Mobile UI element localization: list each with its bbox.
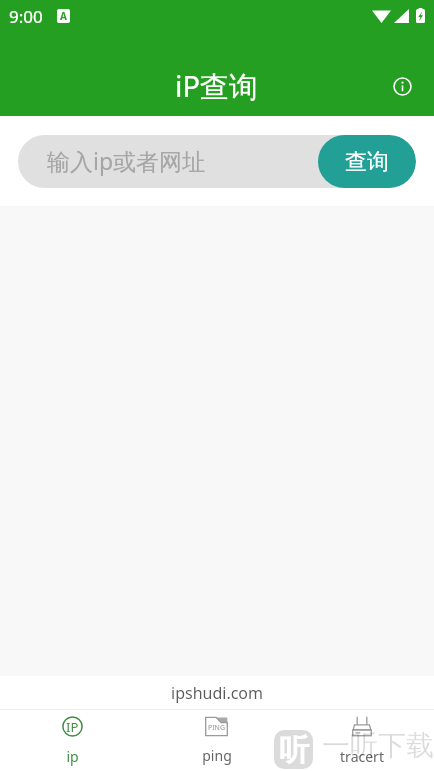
- staticText: iP查询: [175, 66, 259, 106]
- staticText: IP: [66, 718, 79, 736]
- button[interactable]: Info: [382, 66, 422, 106]
- staticText: ping: [202, 746, 232, 765]
- staticText: A: [60, 9, 67, 23]
- staticText: 9:00: [9, 5, 43, 26]
- staticText: ip: [66, 747, 79, 766]
- button[interactable]: tracert: [289, 710, 434, 771]
- staticText: 查询: [345, 148, 389, 176]
- staticText: 一听下载: [322, 728, 434, 763]
- button[interactable]: 输入ip或者网址: [18, 135, 318, 188]
- staticText: tracert: [340, 747, 384, 766]
- staticText: 听: [279, 731, 309, 769]
- staticText: PING: [208, 723, 226, 733]
- button[interactable]: PING: [144, 710, 289, 771]
- button[interactable]: 查询: [318, 135, 416, 188]
- staticText: 输入ip或者网址: [47, 145, 206, 176]
- button[interactable]: IP: [0, 710, 144, 771]
- staticText: ipshudi.com: [171, 682, 263, 704]
